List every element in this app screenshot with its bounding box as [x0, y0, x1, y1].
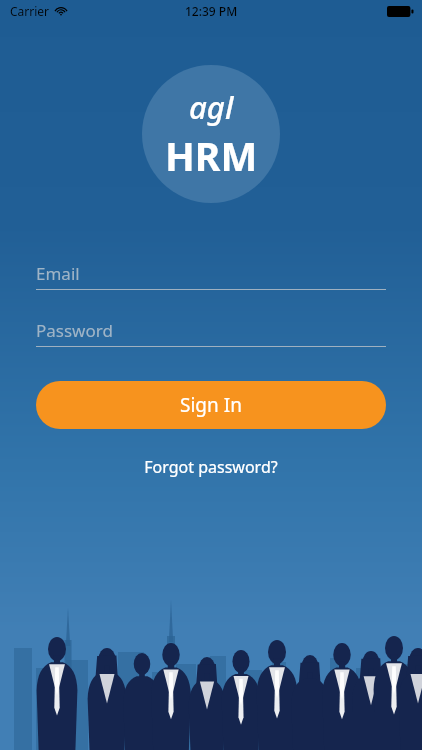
button[interactable]: Forgot password?	[132, 450, 290, 484]
staticText: HRM	[165, 129, 258, 182]
staticText: Forgot password?	[144, 456, 278, 478]
staticText: Email	[36, 262, 80, 285]
button[interactable]: Sign In	[36, 381, 386, 429]
button[interactable]: Email	[36, 258, 386, 290]
button[interactable]: Password	[36, 315, 386, 347]
staticText: agl	[189, 86, 234, 128]
staticText: Carrier	[10, 3, 50, 19]
staticText: Password	[36, 319, 113, 342]
staticText: Sign In	[180, 392, 242, 418]
staticText: 12:39 PM	[185, 3, 238, 19]
